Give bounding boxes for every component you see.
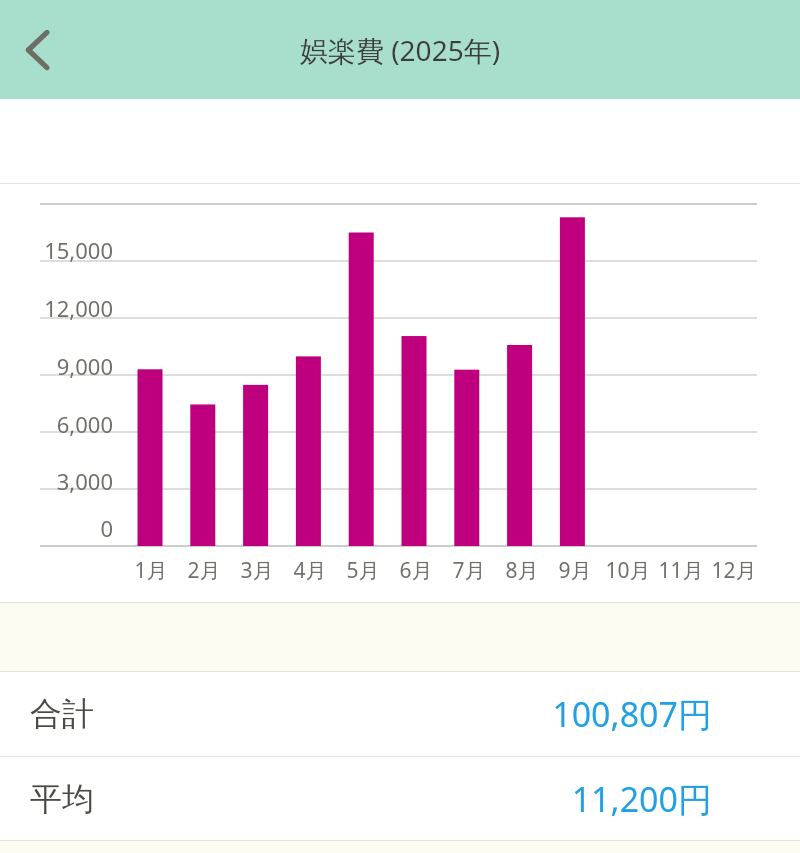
staticText: 娯楽費 (2025年): [80, 31, 720, 69]
staticText: 6,000: [0, 409, 113, 439]
staticText: 3,000: [0, 466, 113, 496]
button[interactable]: 平均: [0, 757, 800, 840]
staticText: 100,807円: [552, 691, 712, 737]
staticText: 3月: [240, 556, 274, 585]
staticText: 平均: [30, 779, 94, 819]
button[interactable]: 戻る: [0, 0, 76, 99]
staticText: 5月: [346, 556, 380, 585]
staticText: 11月: [658, 556, 704, 585]
staticText: 12,000: [0, 293, 113, 323]
staticText: 6月: [399, 556, 433, 585]
staticText: 12月: [711, 556, 757, 585]
staticText: 0: [0, 513, 113, 543]
staticText: 1月: [134, 556, 168, 585]
staticText: 15,000: [0, 235, 113, 265]
staticText: 9,000: [0, 351, 113, 381]
staticText: 11,200円: [571, 776, 712, 822]
staticText: 4月: [293, 556, 327, 585]
staticText: 7月: [452, 556, 486, 585]
staticText: 9月: [558, 556, 592, 585]
staticText: 2月: [187, 556, 221, 585]
staticText: 10月: [605, 556, 651, 585]
button[interactable]: 合計: [0, 672, 800, 756]
staticText: 8月: [505, 556, 539, 585]
staticText: 合計: [30, 694, 94, 734]
